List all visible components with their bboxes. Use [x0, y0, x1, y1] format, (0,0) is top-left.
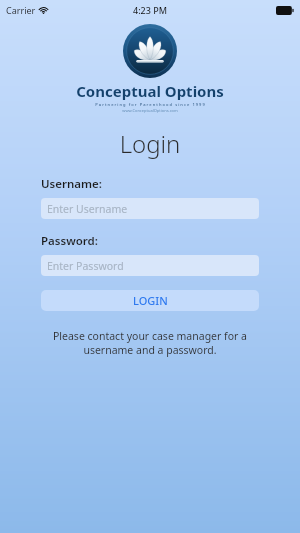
button[interactable]: LOGIN: [41, 290, 259, 311]
staticText: Conceptual Options: [76, 81, 224, 101]
staticText: Please contact your case manager for a u…: [41, 329, 259, 357]
staticText: www.ConceptualOptions.com: [122, 108, 178, 113]
staticText: Enter Password: [47, 259, 124, 273]
staticText: Carrier: [6, 4, 36, 16]
staticText: Password:: [41, 233, 98, 249]
button[interactable]: Enter Username: [41, 198, 259, 219]
staticText: LOGIN: [133, 293, 168, 308]
staticText: 4:23 PM: [133, 4, 167, 16]
staticText: P a r t n e r i n g f o r P a r e n t h …: [95, 102, 205, 107]
staticText: Login: [0, 127, 300, 160]
staticText: Enter Username: [47, 202, 128, 216]
staticText: Username:: [41, 176, 102, 192]
button[interactable]: Enter Password: [41, 255, 259, 276]
